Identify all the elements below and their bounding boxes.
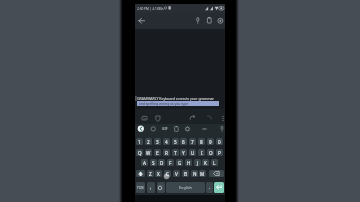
staticText: P — [218, 150, 221, 156]
button[interactable]: L — [211, 159, 218, 166]
staticText: R — [165, 150, 168, 156]
staticText: , — [150, 184, 152, 191]
staticText: O — [209, 150, 213, 156]
button[interactable]: E — [154, 149, 161, 156]
button[interactable]: N — [191, 170, 198, 177]
staticText: . — [209, 184, 211, 191]
staticText: E — [156, 150, 159, 156]
staticText: I — [201, 150, 203, 156]
staticText: Z — [149, 171, 152, 177]
staticText: D — [160, 160, 164, 166]
staticText: 4 — [165, 139, 168, 145]
button[interactable]: 0 — [216, 138, 223, 145]
button[interactable]: 7 — [189, 138, 196, 145]
button[interactable]: 6 — [180, 138, 187, 145]
staticText: J — [197, 160, 199, 166]
button[interactable]: J — [194, 159, 201, 166]
button[interactable]: K — [202, 159, 209, 166]
button[interactable] — [209, 170, 224, 177]
staticText: 8 — [200, 139, 203, 145]
staticText: C — [166, 171, 169, 177]
staticText: B — [184, 171, 187, 177]
button[interactable] — [135, 124, 225, 138]
staticText: 3 — [156, 139, 159, 145]
button[interactable]: C — [164, 170, 171, 177]
button[interactable]: S — [150, 159, 157, 166]
staticText: Y — [182, 150, 185, 156]
button[interactable]: 8 — [198, 138, 205, 145]
staticText: 6 — [182, 139, 185, 145]
button[interactable] — [135, 29, 225, 110]
button[interactable]: R — [163, 149, 170, 156]
staticText: X — [157, 171, 160, 177]
staticText: G — [178, 160, 182, 166]
staticText: U — [191, 150, 195, 156]
button[interactable]: B — [182, 170, 189, 177]
staticText: 5 — [174, 139, 177, 145]
staticText: 9 — [209, 139, 212, 145]
button[interactable]: Q — [136, 149, 143, 156]
button[interactable]: X — [155, 170, 162, 177]
staticText: A — [143, 160, 146, 166]
button[interactable]: O — [207, 149, 214, 156]
button[interactable]: 3 — [154, 138, 161, 145]
button[interactable]: 1 — [136, 138, 143, 145]
button[interactable] — [214, 182, 224, 193]
button[interactable]: W — [145, 149, 152, 156]
button[interactable]: F — [167, 159, 174, 166]
staticText: S — [152, 160, 155, 166]
staticText: 2:50 PM | 4.1KB/s — [137, 7, 164, 11]
staticText: W — [146, 150, 151, 156]
button[interactable]: GIF — [161, 126, 168, 131]
button[interactable]: A — [141, 159, 148, 166]
staticText: 0 — [218, 139, 221, 145]
staticText: F — [169, 160, 172, 166]
button[interactable]: M — [199, 170, 206, 177]
button[interactable]: T — [172, 149, 179, 156]
staticText: H — [187, 160, 191, 166]
staticText: T — [174, 150, 177, 156]
staticText: V — [175, 171, 178, 177]
button[interactable]: H — [185, 159, 192, 166]
button[interactable]: G — [176, 159, 183, 166]
button[interactable]: 9 — [207, 138, 214, 145]
button[interactable]: 4 — [163, 138, 170, 145]
button[interactable]: , — [147, 182, 155, 193]
button[interactable]: V — [173, 170, 180, 177]
button[interactable]: 5 — [172, 138, 179, 145]
staticText: Q — [138, 150, 142, 156]
staticText: 1 — [138, 139, 141, 145]
staticText: K — [204, 160, 207, 166]
staticText: ?123 — [137, 186, 144, 190]
button[interactable] — [136, 170, 145, 177]
staticText: English — [179, 185, 192, 190]
button[interactable]: English — [166, 182, 205, 193]
button[interactable]: D — [158, 159, 165, 166]
staticText: 7 — [191, 139, 194, 145]
button[interactable] — [157, 182, 165, 193]
staticText: M — [200, 171, 205, 177]
button[interactable]: Z — [147, 170, 154, 177]
staticText: 2 — [147, 139, 150, 145]
button[interactable]: . — [206, 182, 213, 193]
button[interactable]: U — [189, 149, 196, 156]
button[interactable]: 2 — [145, 138, 152, 145]
button[interactable]: I — [198, 149, 205, 156]
staticText: N — [193, 171, 197, 177]
button[interactable]: P — [216, 149, 223, 156]
staticText: GIF — [162, 126, 168, 131]
staticText: GRAMMARLY Keyboard corrects your grammar — [137, 96, 214, 101]
staticText: L — [213, 160, 216, 166]
button[interactable] — [135, 13, 225, 29]
button[interactable]: ?123 — [136, 182, 145, 193]
staticText: and spelling wrong as you type — [137, 101, 189, 106]
button[interactable]: Y — [180, 149, 187, 156]
